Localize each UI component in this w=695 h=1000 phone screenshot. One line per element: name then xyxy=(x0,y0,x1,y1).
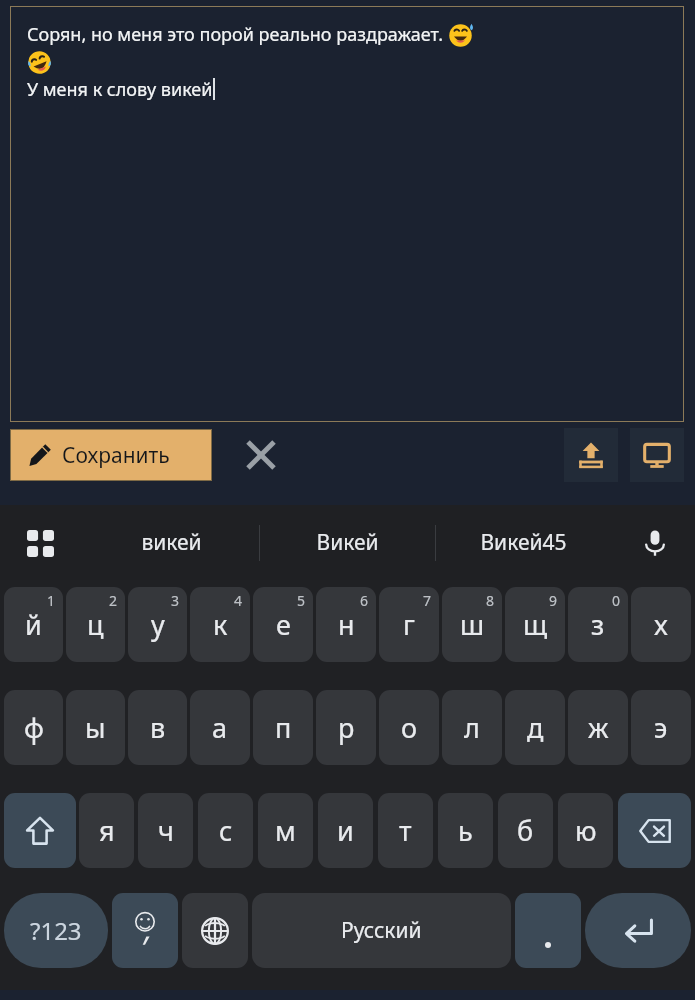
staticText: ф xyxy=(24,709,44,746)
button[interactable]: н xyxy=(316,587,376,662)
staticText: Русский xyxy=(341,916,422,945)
button[interactable] xyxy=(515,893,581,968)
staticText: Сорян, но меня это порой реально раздраж… xyxy=(27,22,444,47)
staticText: г xyxy=(403,606,415,643)
button[interactable]: в xyxy=(128,690,187,765)
button[interactable]: ч xyxy=(138,793,193,868)
button[interactable]: ?123 xyxy=(4,893,108,968)
staticText: н xyxy=(338,606,355,643)
staticText: 4 xyxy=(234,591,243,610)
button[interactable]: м xyxy=(258,793,313,868)
button[interactable]: с xyxy=(198,793,253,868)
button[interactable]: п xyxy=(253,690,313,765)
button[interactable]: Shift xyxy=(4,793,76,868)
button[interactable]: Панель инструментов xyxy=(14,517,66,569)
staticText: м xyxy=(275,812,296,849)
button[interactable]: л xyxy=(442,690,502,765)
staticText: ц xyxy=(87,606,104,643)
button[interactable]: Backspace xyxy=(618,793,691,868)
staticText: ?123 xyxy=(30,914,82,947)
staticText: викей xyxy=(141,528,202,557)
button[interactable]: х xyxy=(631,587,691,662)
button[interactable]: Сохранить xyxy=(10,429,212,481)
staticText: б xyxy=(517,812,534,849)
button[interactable]: к xyxy=(190,587,250,662)
staticText: д xyxy=(527,709,544,746)
button[interactable]: у xyxy=(128,587,187,662)
button[interactable]: ы xyxy=(66,690,125,765)
staticText: ы xyxy=(85,709,106,746)
button[interactable]: Смена языка xyxy=(182,893,248,968)
button[interactable]: Дисплей xyxy=(630,428,684,482)
button[interactable]: и xyxy=(318,793,373,868)
button[interactable]: г xyxy=(379,587,439,662)
staticText: 8 xyxy=(486,591,495,610)
button[interactable]: Викей xyxy=(260,505,435,580)
button[interactable]: ш xyxy=(442,587,502,662)
button[interactable]: т xyxy=(378,793,433,868)
staticText: 2 xyxy=(109,591,118,610)
button[interactable]: Сорян, но меня это порой реально раздраж… xyxy=(10,6,684,422)
button[interactable]: Enter xyxy=(585,893,691,968)
staticText: е xyxy=(276,606,291,643)
staticText: 9 xyxy=(549,591,558,610)
staticText: с xyxy=(219,812,233,849)
button[interactable]: Голосовой ввод xyxy=(629,517,681,569)
button[interactable]: з xyxy=(568,587,628,662)
button[interactable]: викей xyxy=(84,505,259,580)
staticText: и xyxy=(337,812,354,849)
button[interactable]: ю xyxy=(558,793,613,868)
staticText: к xyxy=(213,606,228,643)
button[interactable]: ц xyxy=(66,587,125,662)
staticText: а xyxy=(212,709,228,746)
button[interactable]: р xyxy=(316,690,376,765)
staticText: ч xyxy=(158,812,174,849)
button[interactable]: ь xyxy=(438,793,493,868)
staticText: о xyxy=(401,709,418,746)
button[interactable]: б xyxy=(498,793,553,868)
staticText: 1 xyxy=(47,591,56,610)
button[interactable]: д xyxy=(505,690,565,765)
staticText: У меня к слову викей xyxy=(27,77,213,102)
staticText: Викей xyxy=(316,528,379,557)
button[interactable]: Эмодзи xyxy=(112,893,178,968)
button[interactable]: а xyxy=(190,690,250,765)
button[interactable]: е xyxy=(253,587,313,662)
staticText: Викей45 xyxy=(480,528,567,557)
staticText: ь xyxy=(458,812,473,849)
button[interactable]: я xyxy=(79,793,134,868)
button[interactable]: Отмена xyxy=(235,429,287,481)
staticText: п xyxy=(275,709,292,746)
button[interactable]: Экспорт xyxy=(564,428,618,482)
staticText: щ xyxy=(523,606,548,643)
staticText: 6 xyxy=(360,591,369,610)
button[interactable]: о xyxy=(379,690,439,765)
staticText: Сохранить xyxy=(62,441,170,470)
button[interactable]: й xyxy=(4,587,63,662)
staticText: т xyxy=(399,812,412,849)
button[interactable]: Викей45 xyxy=(436,505,611,580)
staticText: х xyxy=(654,606,668,643)
staticText: э xyxy=(654,709,668,746)
staticText: ш xyxy=(460,606,485,643)
button[interactable]: Русский xyxy=(252,893,511,968)
staticText: й xyxy=(25,606,42,643)
staticText: з xyxy=(591,606,605,643)
button[interactable]: э xyxy=(631,690,691,765)
button[interactable]: ж xyxy=(568,690,628,765)
staticText: 3 xyxy=(171,591,180,610)
staticText: ю xyxy=(575,812,597,849)
staticText: в xyxy=(150,709,166,746)
button[interactable]: ф xyxy=(4,690,63,765)
staticText: л xyxy=(464,709,480,746)
staticText: 7 xyxy=(423,591,432,610)
staticText: р xyxy=(338,709,355,746)
staticText: ж xyxy=(588,709,609,746)
button[interactable]: щ xyxy=(505,587,565,662)
staticText: 0 xyxy=(612,591,621,610)
staticText: я xyxy=(99,812,115,849)
staticText: 5 xyxy=(297,591,306,610)
staticText: у xyxy=(151,606,165,643)
